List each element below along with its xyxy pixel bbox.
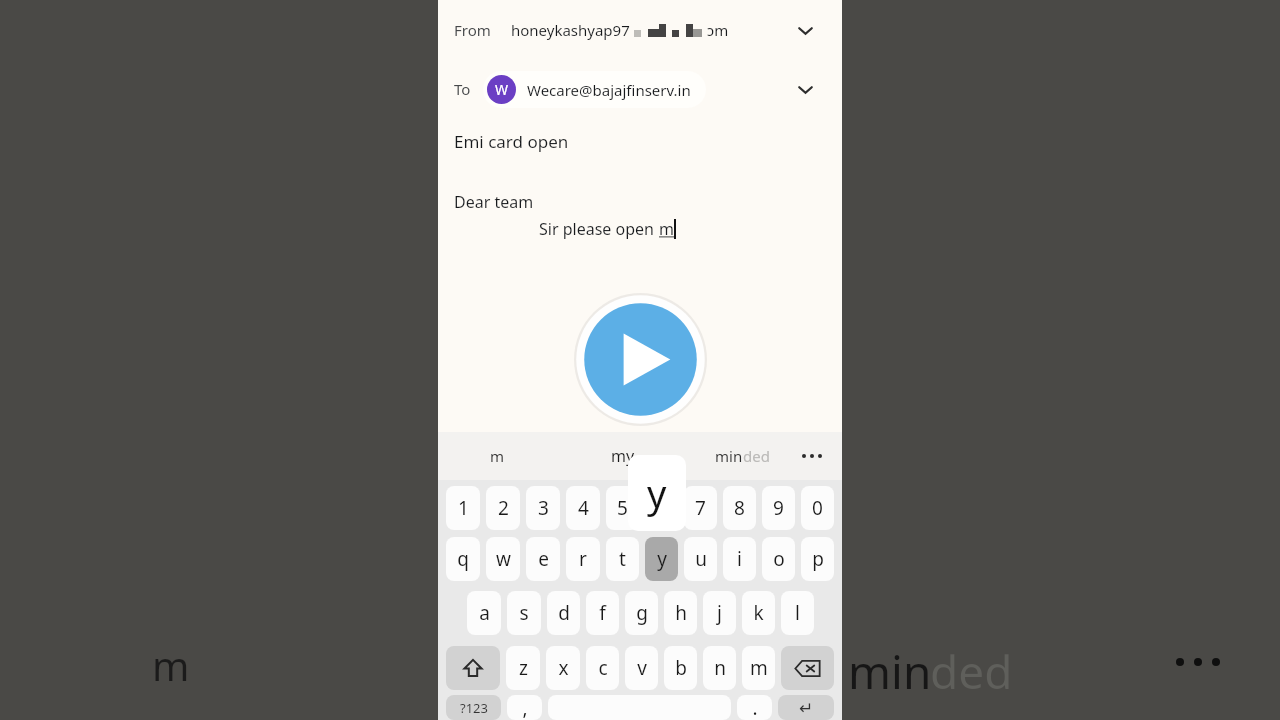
- staticText: u: [695, 546, 707, 572]
- staticText: my: [611, 445, 635, 467]
- staticText: q: [457, 546, 469, 572]
- staticText: 3: [538, 495, 549, 521]
- button[interactable]: j: [703, 591, 736, 635]
- staticText: 7: [695, 495, 706, 521]
- staticText: .: [752, 695, 758, 720]
- staticText: i: [737, 546, 742, 572]
- button[interactable]: v: [625, 646, 658, 690]
- staticText: s: [519, 600, 529, 626]
- staticText: w: [496, 546, 511, 572]
- staticText: 9: [773, 495, 784, 521]
- button[interactable]: r: [566, 537, 600, 581]
- staticText: min: [715, 446, 743, 466]
- button[interactable]: k: [742, 591, 775, 635]
- staticText: From: [454, 20, 491, 40]
- button[interactable]: f: [586, 591, 619, 635]
- button[interactable]: ,: [507, 695, 542, 720]
- staticText: 0: [812, 495, 823, 521]
- staticText: n: [714, 655, 726, 681]
- staticText: m: [152, 638, 190, 692]
- staticText: ded: [930, 640, 1013, 703]
- staticText: m: [490, 446, 505, 466]
- staticText: o: [773, 546, 785, 572]
- staticText: 6: [656, 495, 667, 521]
- staticText: ,: [522, 695, 528, 720]
- staticText: j: [717, 600, 722, 626]
- staticText: g: [636, 600, 648, 626]
- staticText: b: [675, 655, 687, 681]
- button[interactable]: h: [664, 591, 697, 635]
- staticText: 4: [578, 495, 589, 521]
- staticText: l: [795, 600, 800, 626]
- staticText: Dear team: [454, 191, 534, 213]
- staticText: W: [495, 80, 509, 99]
- button[interactable]: z: [506, 646, 540, 690]
- button[interactable]: Expand To field: [784, 68, 826, 110]
- button[interactable]: 2: [486, 486, 520, 530]
- staticText: c: [598, 655, 608, 681]
- button[interactable]: p: [801, 537, 834, 581]
- button[interactable]: min: [703, 438, 782, 474]
- button[interactable]: More suggestions: [794, 446, 830, 466]
- button[interactable]: o: [762, 537, 795, 581]
- button[interactable]: 8: [723, 486, 756, 530]
- button[interactable]: my: [593, 437, 653, 475]
- staticText: z: [519, 655, 528, 681]
- button[interactable]: s: [507, 591, 541, 635]
- staticText: d: [558, 600, 570, 626]
- button[interactable]: t: [606, 537, 639, 581]
- button[interactable]: x: [546, 646, 580, 690]
- staticText: m: [659, 218, 674, 240]
- button[interactable]: y: [645, 537, 678, 581]
- button[interactable]: c: [586, 646, 619, 690]
- button[interactable]: Backspace: [781, 646, 834, 690]
- button[interactable]: d: [547, 591, 580, 635]
- staticText: x: [558, 655, 569, 681]
- staticText: f: [599, 600, 606, 626]
- button[interactable]: 5: [606, 486, 639, 530]
- button[interactable]: Enter: [778, 695, 834, 720]
- staticText: 5: [617, 495, 628, 521]
- button[interactable]: m: [742, 646, 775, 690]
- button[interactable]: w: [486, 537, 520, 581]
- button[interactable]: i: [723, 537, 756, 581]
- staticText: ded: [743, 446, 770, 466]
- button[interactable]: a: [467, 591, 501, 635]
- staticText: v: [637, 655, 647, 681]
- button[interactable]: e: [526, 537, 560, 581]
- button[interactable]: b: [664, 646, 697, 690]
- button[interactable]: Play: [574, 293, 707, 426]
- staticText: t: [619, 546, 626, 572]
- staticText: honeykashyap97: [511, 20, 630, 40]
- staticText: min: [848, 640, 932, 703]
- button[interactable]: Shift: [446, 646, 500, 690]
- staticText: Wecare@bajajfinserv.in: [527, 80, 691, 100]
- button[interactable]: u: [684, 537, 717, 581]
- button[interactable]: 4: [566, 486, 600, 530]
- button[interactable]: W: [483, 71, 706, 108]
- staticText: 8: [734, 495, 745, 521]
- button[interactable]: Expand From field: [784, 9, 826, 51]
- button[interactable]: q: [446, 537, 480, 581]
- staticText: a: [479, 600, 490, 626]
- button[interactable]: 6: [645, 486, 678, 530]
- staticText: r: [579, 546, 587, 572]
- button[interactable]: l: [781, 591, 814, 635]
- button[interactable]: 1: [446, 486, 480, 530]
- button[interactable]: Symbols: [446, 695, 501, 720]
- staticText: ɔm: [707, 20, 729, 40]
- staticText: m: [750, 655, 768, 681]
- button[interactable]: g: [625, 591, 658, 635]
- staticText: y: [647, 467, 667, 519]
- button[interactable]: m: [472, 438, 523, 474]
- staticText: k: [753, 600, 764, 626]
- button[interactable]: 3: [526, 486, 560, 530]
- staticText: 1: [458, 495, 469, 521]
- button[interactable]: 0: [801, 486, 834, 530]
- button[interactable]: .: [737, 695, 772, 720]
- button[interactable]: n: [703, 646, 736, 690]
- button[interactable]: 9: [762, 486, 795, 530]
- button[interactable]: 7: [684, 486, 717, 530]
- staticText: p: [812, 546, 824, 572]
